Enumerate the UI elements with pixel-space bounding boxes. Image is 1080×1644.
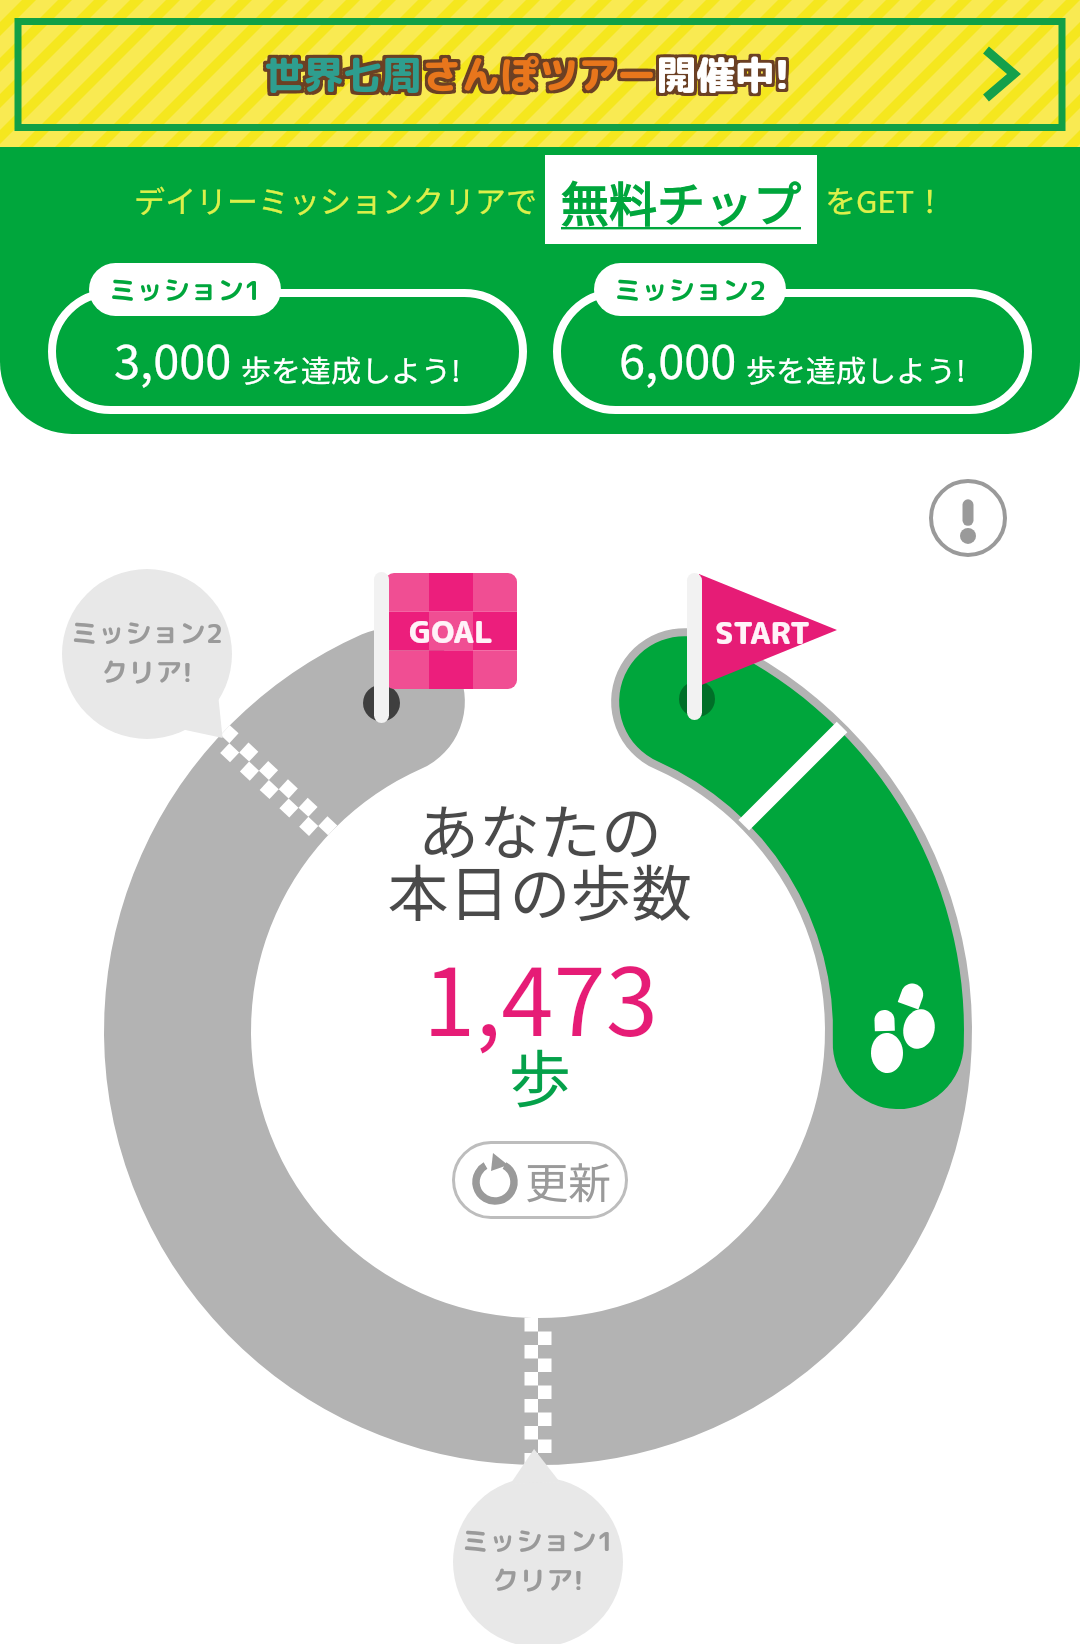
staticText: さんぽツアー — [422, 44, 657, 98]
staticText: 世界七周 — [268, 47, 425, 101]
button[interactable]: 世界七周 — [0, 0, 1080, 147]
button[interactable]: 更新 — [452, 1141, 628, 1219]
staticText: さんぽツアー — [425, 47, 660, 101]
staticText: 開催中! — [657, 50, 790, 104]
staticText: START — [715, 611, 811, 654]
staticText: をGET！ — [825, 177, 946, 222]
staticText: さんぽツアー — [422, 47, 657, 101]
staticText: 開催中! — [657, 47, 790, 101]
staticText: 開催中! — [654, 50, 787, 104]
staticText: 開催中! — [660, 44, 793, 98]
staticText: 更新 — [525, 1149, 611, 1211]
staticText: 世界七周 — [265, 50, 422, 104]
staticText: 1,473 — [423, 927, 658, 1063]
staticText: さんぽツアー — [419, 50, 654, 104]
staticText: ミッション1 — [109, 271, 262, 309]
staticText: さんぽツアー — [419, 44, 654, 98]
staticText: 歩 — [509, 1030, 572, 1120]
staticText: GOAL — [409, 610, 493, 653]
staticText: ミッション2 クリア! — [27, 614, 267, 691]
staticText: さんぽツアー — [425, 50, 660, 104]
staticText: 開催中! — [654, 44, 787, 98]
staticText: 世界七周 — [265, 44, 422, 98]
staticText: 世界七周 — [268, 50, 425, 104]
staticText: 歩を達成しよう! — [241, 347, 461, 390]
staticText: ミッション1 クリア! — [418, 1522, 658, 1599]
staticText: 世界七周 — [265, 47, 422, 101]
button[interactable]: 3,000 — [48, 289, 527, 414]
staticText: 開催中! — [657, 44, 790, 98]
staticText: 6,000 — [619, 324, 737, 392]
staticText: 開催中! — [660, 47, 793, 101]
staticText: 開催中! — [654, 47, 787, 101]
button[interactable]: 6,000 — [553, 289, 1032, 414]
staticText: 無料チップ — [561, 166, 802, 236]
staticText: 開催中! — [660, 50, 793, 104]
button[interactable]: Open campaign — [974, 44, 1034, 104]
staticText: 歩を達成しよう! — [746, 347, 966, 390]
staticText: さんぽツアー — [425, 44, 660, 98]
staticText: さんぽツアー — [419, 47, 654, 101]
staticText: ミッション2 — [614, 271, 767, 309]
staticText: 世界七周 — [262, 44, 419, 98]
staticText: さんぽツアー — [422, 50, 657, 104]
staticText: あなたの 本日の歩数 — [387, 784, 693, 933]
button[interactable]: Information — [929, 479, 1007, 557]
staticText: 世界七周 — [262, 50, 419, 104]
staticText: 3,000 — [114, 324, 232, 392]
staticText: 世界七周 — [268, 44, 425, 98]
staticText: デイリーミッションクリアで — [134, 177, 537, 222]
staticText: 世界七周 — [262, 47, 419, 101]
